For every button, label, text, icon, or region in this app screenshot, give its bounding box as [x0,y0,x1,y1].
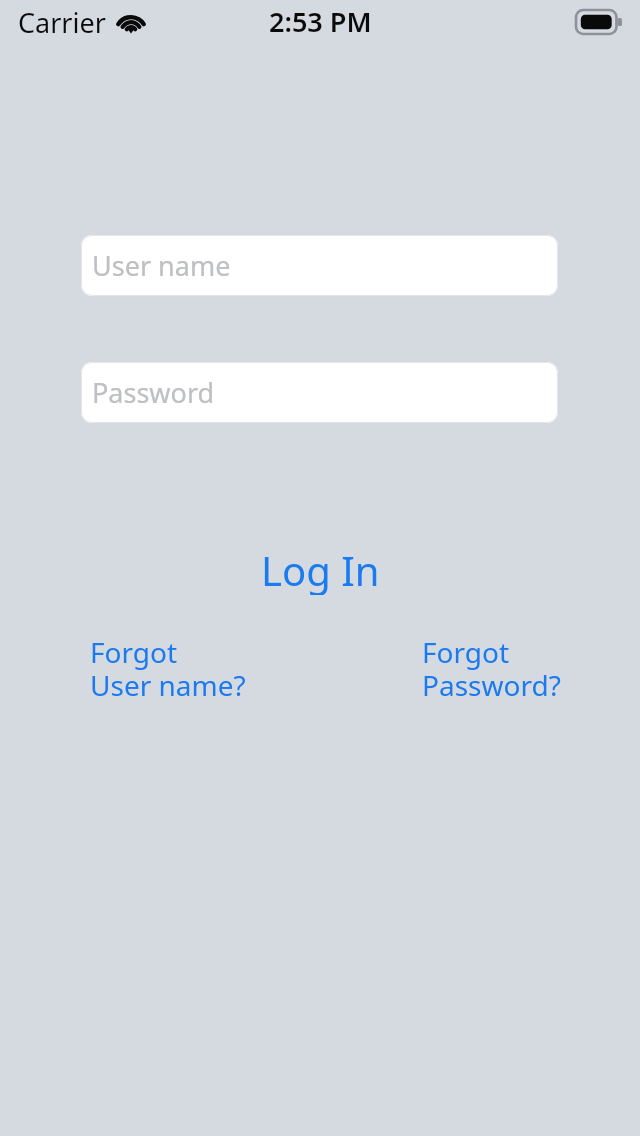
staticText: Password [92,374,215,411]
staticText: 2:53 PM [269,3,372,40]
staticText: Log In [261,543,380,595]
staticText: Carrier [18,4,106,41]
button[interactable]: User name [81,235,558,296]
staticText: Forgot User name? [90,633,246,704]
button[interactable]: Log In [0,543,640,595]
button[interactable]: Password [81,362,558,423]
staticText: User name [92,247,231,284]
button[interactable]: Forgot Password? [422,633,597,704]
other: Battery full [576,10,622,34]
staticText: Forgot Password? [422,633,561,704]
button[interactable]: Forgot User name? [90,633,280,704]
other: Wi-Fi signal [116,11,146,33]
